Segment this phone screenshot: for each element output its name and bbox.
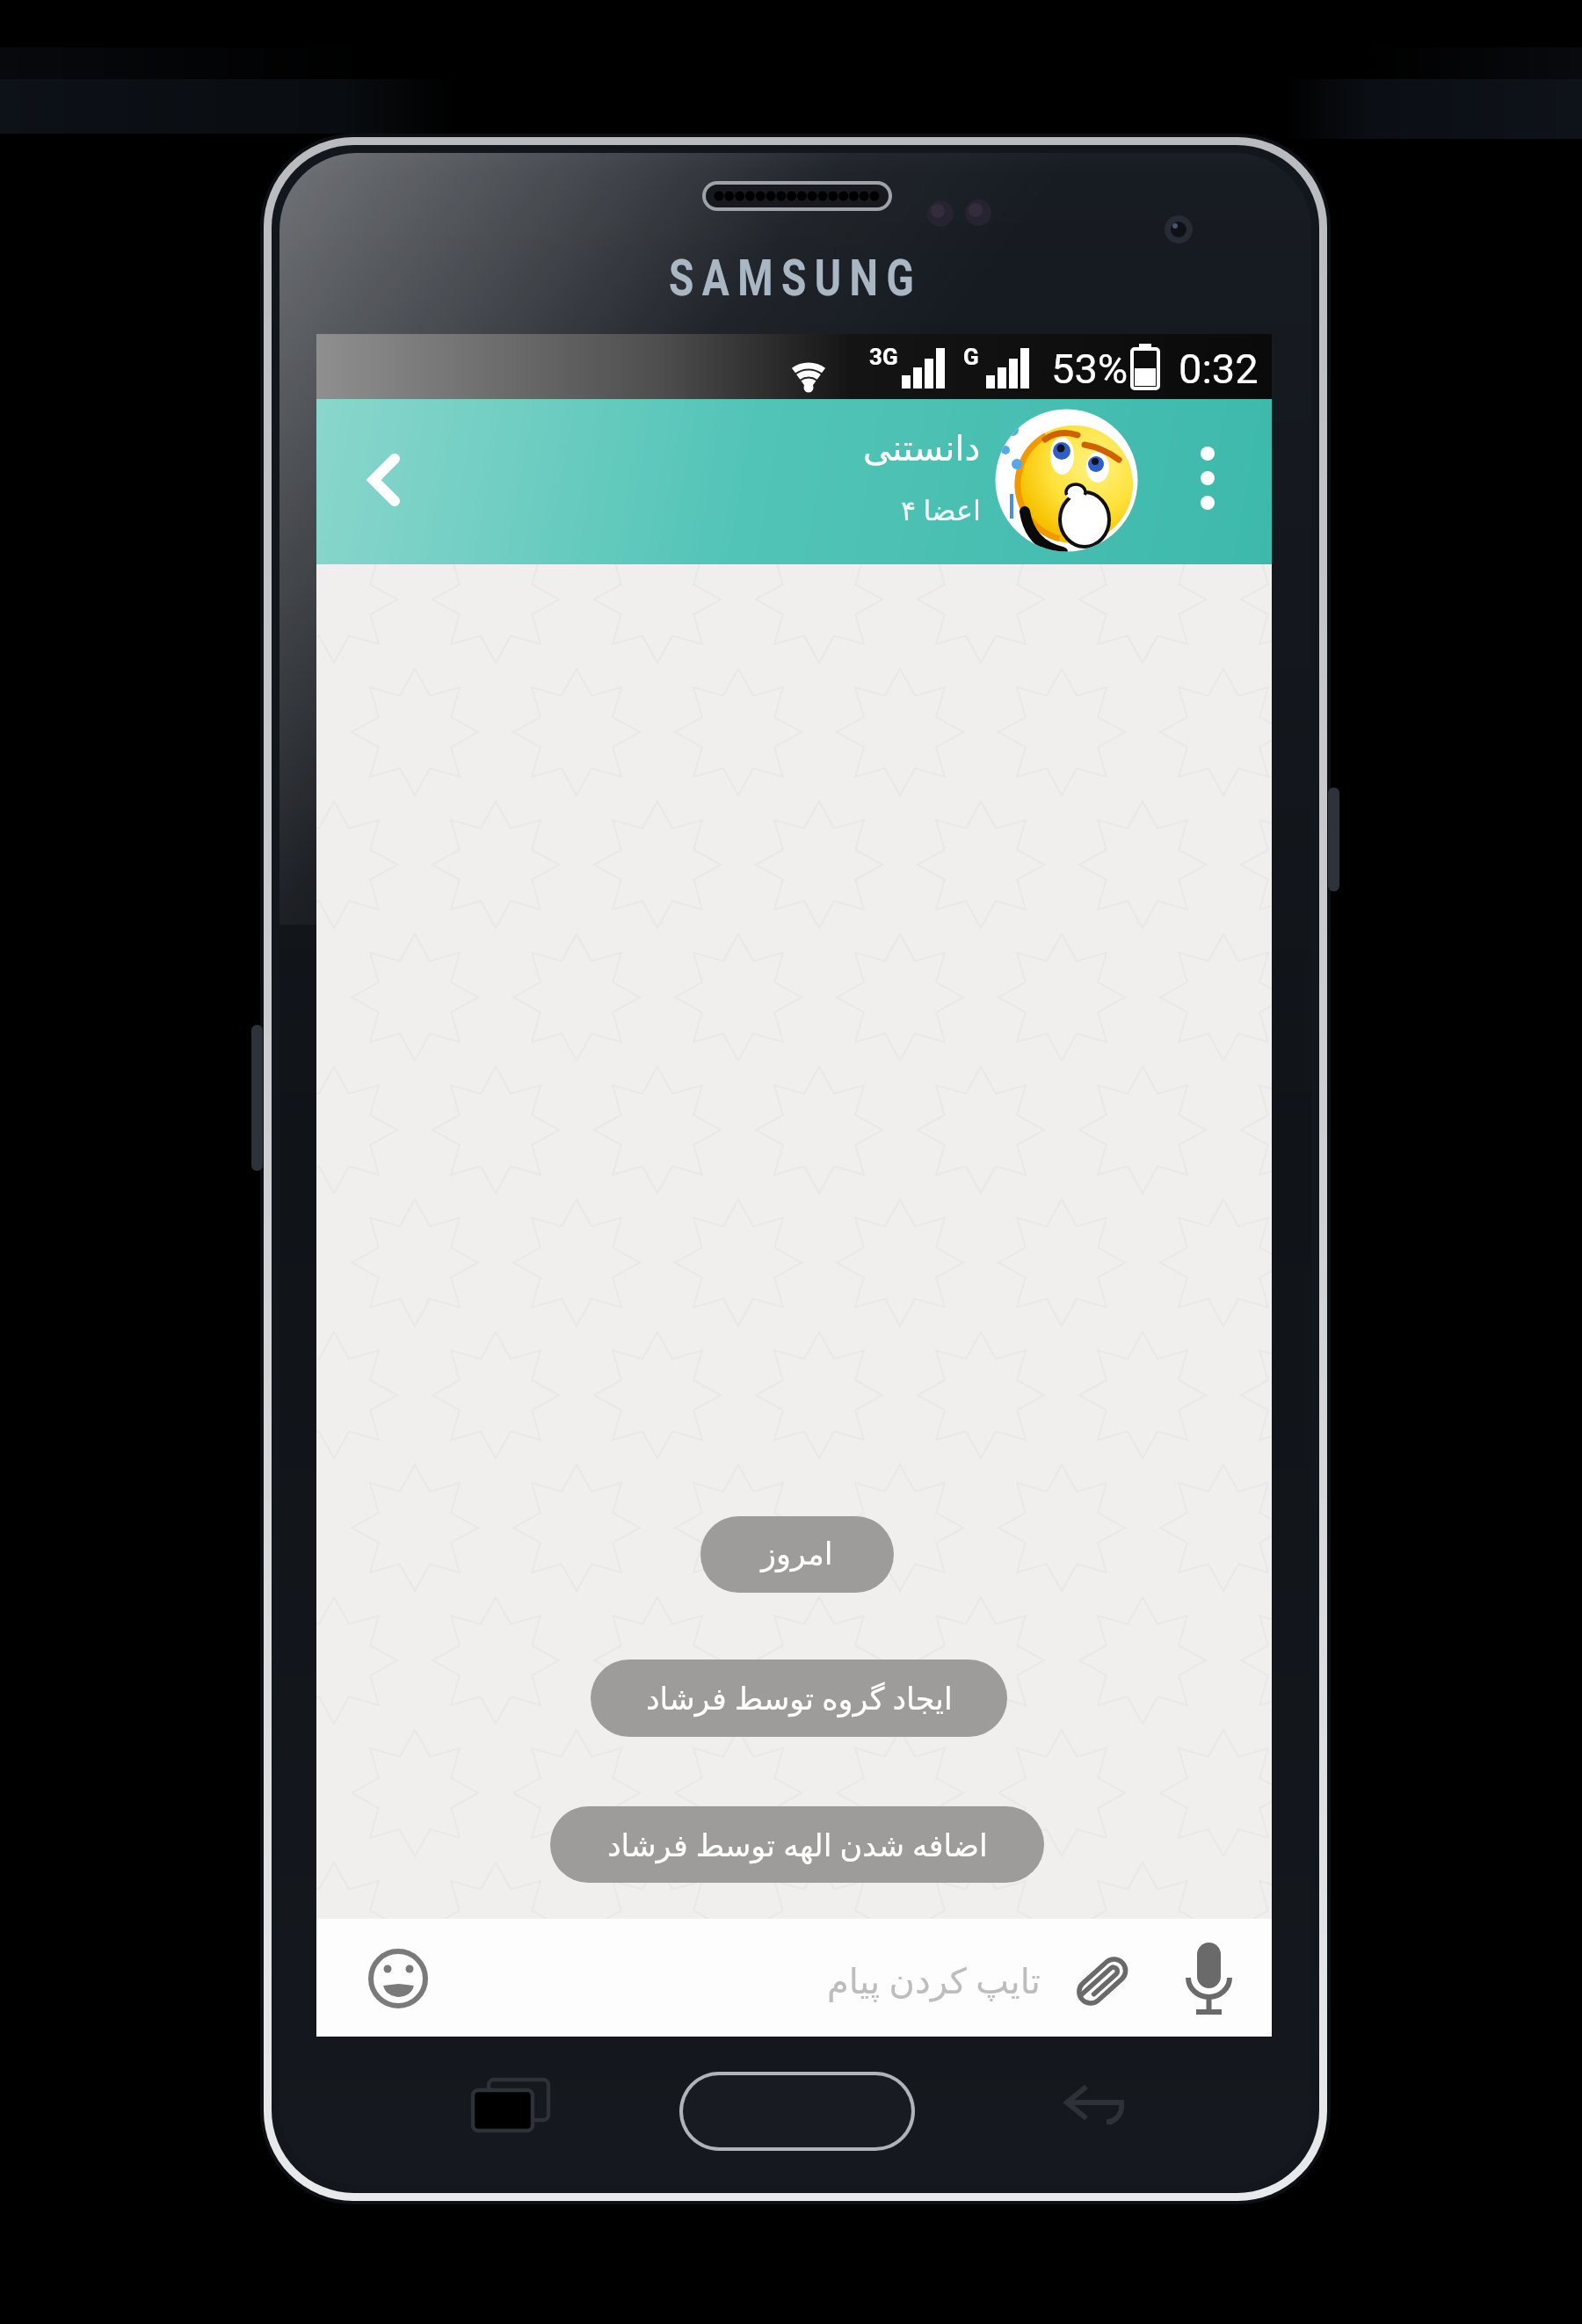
staticText: G	[963, 344, 979, 370]
button[interactable]: دانستنی	[703, 424, 981, 473]
button[interactable]	[680, 2073, 914, 2152]
button[interactable]	[1042, 2071, 1134, 2139]
staticText: 53%	[1051, 345, 1128, 390]
staticText: SAMSUNG	[669, 248, 923, 307]
button[interactable]	[1178, 432, 1237, 524]
button[interactable]	[350, 444, 420, 518]
staticText: دانستنی	[863, 428, 981, 469]
staticText: 0:32	[1179, 345, 1259, 390]
staticText: ایجاد گروه توسط فرشاد	[646, 1677, 953, 1719]
button[interactable]	[1174, 1939, 1245, 2016]
button[interactable]	[1067, 1944, 1137, 2015]
staticText: تایپ کردن پیام	[827, 1956, 1041, 2003]
button[interactable]: ایجاد گروه توسط فرشاد	[591, 1659, 1007, 1737]
staticText: ۴ اعضا	[901, 490, 981, 529]
staticText: اضافه شدن الهه توسط فرشاد	[607, 1824, 988, 1866]
button[interactable]: امروز	[700, 1516, 894, 1593]
button[interactable]	[360, 1944, 436, 2015]
button[interactable]: تایپ کردن پیام	[754, 1953, 1041, 2006]
staticText: امروز	[761, 1536, 833, 1572]
button[interactable]	[995, 409, 1138, 552]
staticText: 3G	[869, 344, 898, 370]
button[interactable]: اضافه شدن الهه توسط فرشاد	[550, 1806, 1044, 1883]
button[interactable]	[457, 2071, 554, 2139]
